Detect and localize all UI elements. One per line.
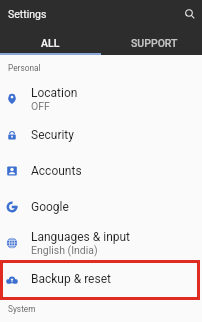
- staticText: Security: [31, 128, 74, 142]
- button[interactable]: ALL: [0, 31, 101, 55]
- button[interactable]: Security: [0, 117, 202, 153]
- button[interactable]: Search: [182, 6, 198, 22]
- staticText: System: [8, 304, 36, 314]
- staticText: English (India): [31, 244, 98, 256]
- staticText: Google: [31, 200, 69, 214]
- staticText: OFF: [31, 100, 50, 112]
- staticText: Settings: [8, 8, 47, 20]
- staticText: ALL: [41, 37, 60, 49]
- staticText: Backup & reset: [31, 272, 111, 286]
- staticText: SUPPORT: [131, 37, 178, 49]
- button[interactable]: Accounts: [0, 153, 202, 189]
- staticText: Languages & input: [31, 230, 131, 244]
- staticText: Accounts: [31, 164, 82, 178]
- staticText: Personal: [8, 63, 41, 73]
- button[interactable]: Languages & input: [0, 225, 202, 261]
- button[interactable]: Location: [0, 81, 202, 117]
- button[interactable]: SUPPORT: [101, 31, 202, 55]
- button[interactable]: Google: [0, 189, 202, 225]
- staticText: Location: [31, 86, 78, 100]
